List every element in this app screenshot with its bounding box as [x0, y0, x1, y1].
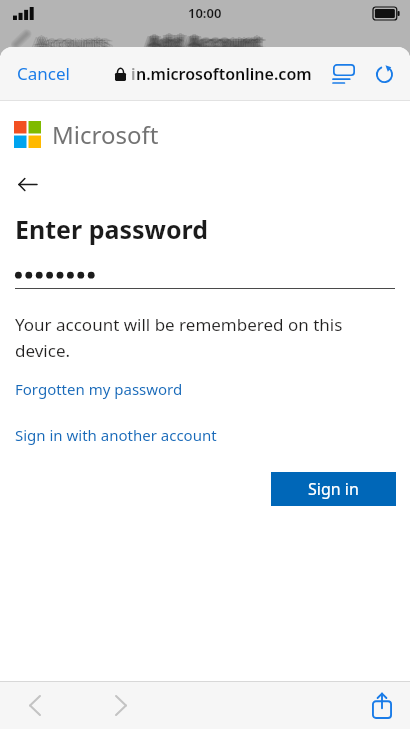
button[interactable]: Sign in — [271, 472, 396, 506]
staticText: Add Account — [145, 30, 259, 55]
staticText: Add Account — [148, 32, 262, 57]
button[interactable]: i — [109, 58, 318, 90]
staticText: Accounts — [38, 30, 111, 53]
staticText: Sign in — [308, 478, 359, 500]
staticText: Add Account — [146, 32, 260, 57]
staticText: Add Account — [146, 29, 260, 54]
button[interactable]: Sign in with another account — [0, 420, 232, 450]
button[interactable]: Share — [366, 686, 398, 725]
staticText: Accounts — [36, 31, 109, 54]
staticText: Accounts — [34, 33, 107, 56]
staticText: Accounts — [39, 31, 112, 54]
button[interactable]: Reload — [369, 59, 400, 90]
staticText: Accounts — [34, 30, 107, 53]
button[interactable]: Forgotten my password — [0, 374, 198, 404]
button[interactable]: Forward — [107, 687, 135, 724]
staticText: Add Account — [148, 30, 262, 55]
staticText: Accounts — [33, 31, 106, 54]
staticText: Accounts — [41, 31, 114, 54]
button[interactable]: Back — [21, 687, 49, 724]
staticText: Accounts — [31, 31, 104, 54]
staticText: n.microsoftonline.com — [136, 63, 312, 85]
staticText: i — [131, 63, 136, 85]
staticText: Accounts — [36, 29, 109, 52]
staticText: Add Account — [148, 28, 262, 53]
staticText: Add Account — [143, 30, 257, 55]
staticText: Accounts — [36, 33, 109, 56]
staticText: 10:00 — [188, 4, 222, 22]
staticText: Add Account — [150, 32, 264, 57]
staticText: Your account will be remembered on this … — [15, 313, 352, 362]
button[interactable] — [15, 264, 395, 289]
staticText: Add Account — [153, 30, 267, 55]
button[interactable]: Cancel — [0, 54, 80, 93]
button[interactable]: Reader view — [327, 58, 361, 90]
button[interactable]: Back — [10, 169, 45, 200]
staticText: Accounts — [38, 33, 111, 56]
staticText: Enter password — [15, 212, 209, 246]
staticText: Add Account — [151, 30, 265, 55]
staticText: Microsoft — [52, 118, 159, 151]
staticText: Add Account — [150, 29, 264, 54]
